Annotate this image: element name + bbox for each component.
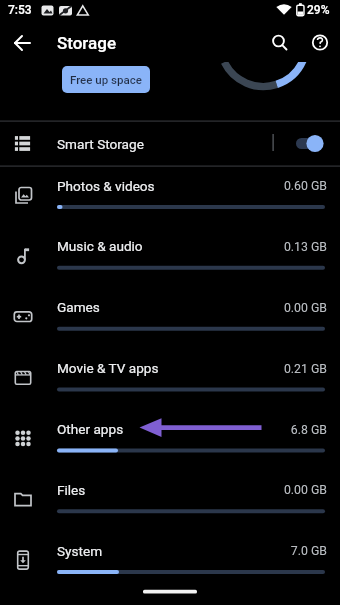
staticText: 0.21 GB <box>0 362 327 378</box>
staticText: 0.13 GB <box>0 240 327 256</box>
staticText: Storage <box>57 33 117 53</box>
staticText: Free up space <box>70 73 142 86</box>
button[interactable] <box>0 288 340 349</box>
button[interactable]: Free up space <box>62 66 150 93</box>
staticText: Photos & videos <box>57 178 155 194</box>
staticText: 0.00 GB <box>0 301 327 317</box>
button[interactable] <box>0 409 340 470</box>
staticText: Smart Storage <box>57 136 144 152</box>
staticText: 29% <box>307 3 330 17</box>
staticText: 7.0 GB <box>0 544 327 560</box>
button[interactable] <box>0 121 340 166</box>
staticText: 0.60 GB <box>0 179 327 195</box>
staticText: Files <box>57 482 86 498</box>
staticText: System <box>57 543 103 559</box>
button[interactable] <box>0 349 340 410</box>
button[interactable] <box>266 29 294 57</box>
button[interactable] <box>306 29 334 57</box>
staticText: 0.00 GB <box>0 483 327 499</box>
button[interactable] <box>8 29 36 57</box>
staticText: Other apps <box>57 421 124 437</box>
staticText: Games <box>57 299 100 315</box>
button[interactable] <box>0 166 340 227</box>
button[interactable] <box>0 470 340 531</box>
staticText: 7:53 <box>8 3 32 17</box>
button[interactable] <box>0 227 340 288</box>
button[interactable] <box>0 531 340 592</box>
staticText: Movie & TV apps <box>57 360 159 376</box>
staticText: 6.8 GB <box>0 423 327 439</box>
staticText: Music & audio <box>57 238 143 254</box>
